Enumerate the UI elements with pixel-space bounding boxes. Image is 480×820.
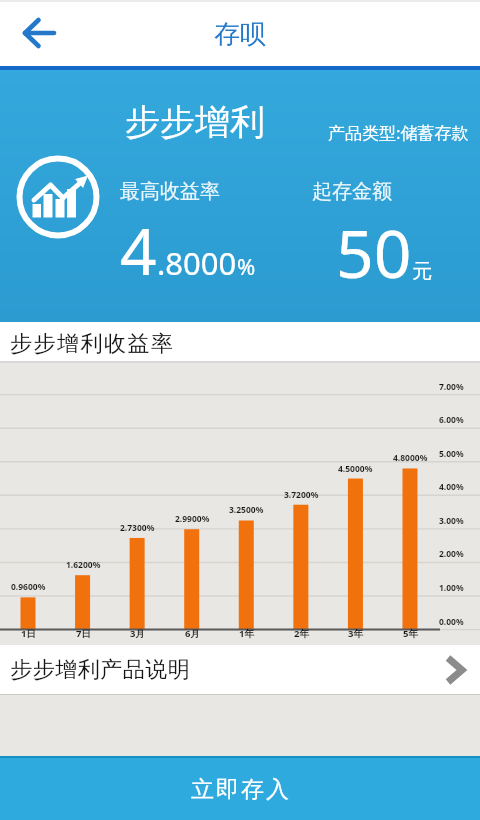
staticText: 5.00% — [439, 448, 464, 460]
staticText: 0.9600% — [11, 581, 46, 593]
staticText: 3.7200% — [284, 489, 319, 501]
staticText: .8000 — [157, 242, 237, 284]
staticText: 1.00% — [439, 582, 464, 594]
staticText: 3月 — [130, 627, 145, 640]
staticText: 1日 — [21, 627, 36, 640]
staticText: 起存金额 — [312, 179, 392, 204]
staticText: 5年 — [403, 627, 418, 640]
staticText: 2.00% — [439, 548, 464, 560]
button[interactable]: 步步增利产品说明 — [0, 645, 480, 694]
staticText: 3.2500% — [229, 504, 264, 516]
button[interactable]: 立即存入 — [0, 758, 480, 820]
staticText: 存呗 — [214, 18, 266, 51]
staticText: 2年 — [294, 627, 309, 640]
staticText: 2.7300% — [120, 522, 155, 534]
staticText: 4 — [120, 207, 157, 294]
staticText: 6月 — [185, 627, 200, 640]
staticText: 步步增利 — [125, 100, 265, 144]
staticText: 4.00% — [439, 481, 464, 493]
staticText: 产品类型:储蓄存款 — [328, 121, 469, 144]
button[interactable] — [0, 0, 66, 66]
staticText: 最高收益率 — [120, 179, 220, 204]
staticText: 元 — [412, 259, 432, 284]
staticText: 4.5000% — [338, 463, 373, 475]
staticText: 7.00% — [439, 381, 464, 393]
staticText: % — [237, 251, 256, 281]
staticText: 步步增利产品说明 — [10, 656, 190, 684]
staticText: 50 — [336, 207, 412, 297]
staticText: 4.8000% — [393, 452, 428, 464]
staticText: 步步增利收益率 — [10, 330, 175, 358]
staticText: 1.6200% — [66, 559, 101, 571]
staticText: 0.00% — [439, 616, 464, 628]
staticText: 1年 — [239, 627, 254, 640]
staticText: 6.00% — [439, 414, 464, 426]
staticText: 3.00% — [439, 515, 464, 527]
staticText: 3年 — [348, 627, 363, 640]
staticText: 2.9900% — [175, 513, 210, 525]
staticText: 立即存入 — [190, 775, 290, 804]
staticText: 7日 — [76, 627, 91, 640]
